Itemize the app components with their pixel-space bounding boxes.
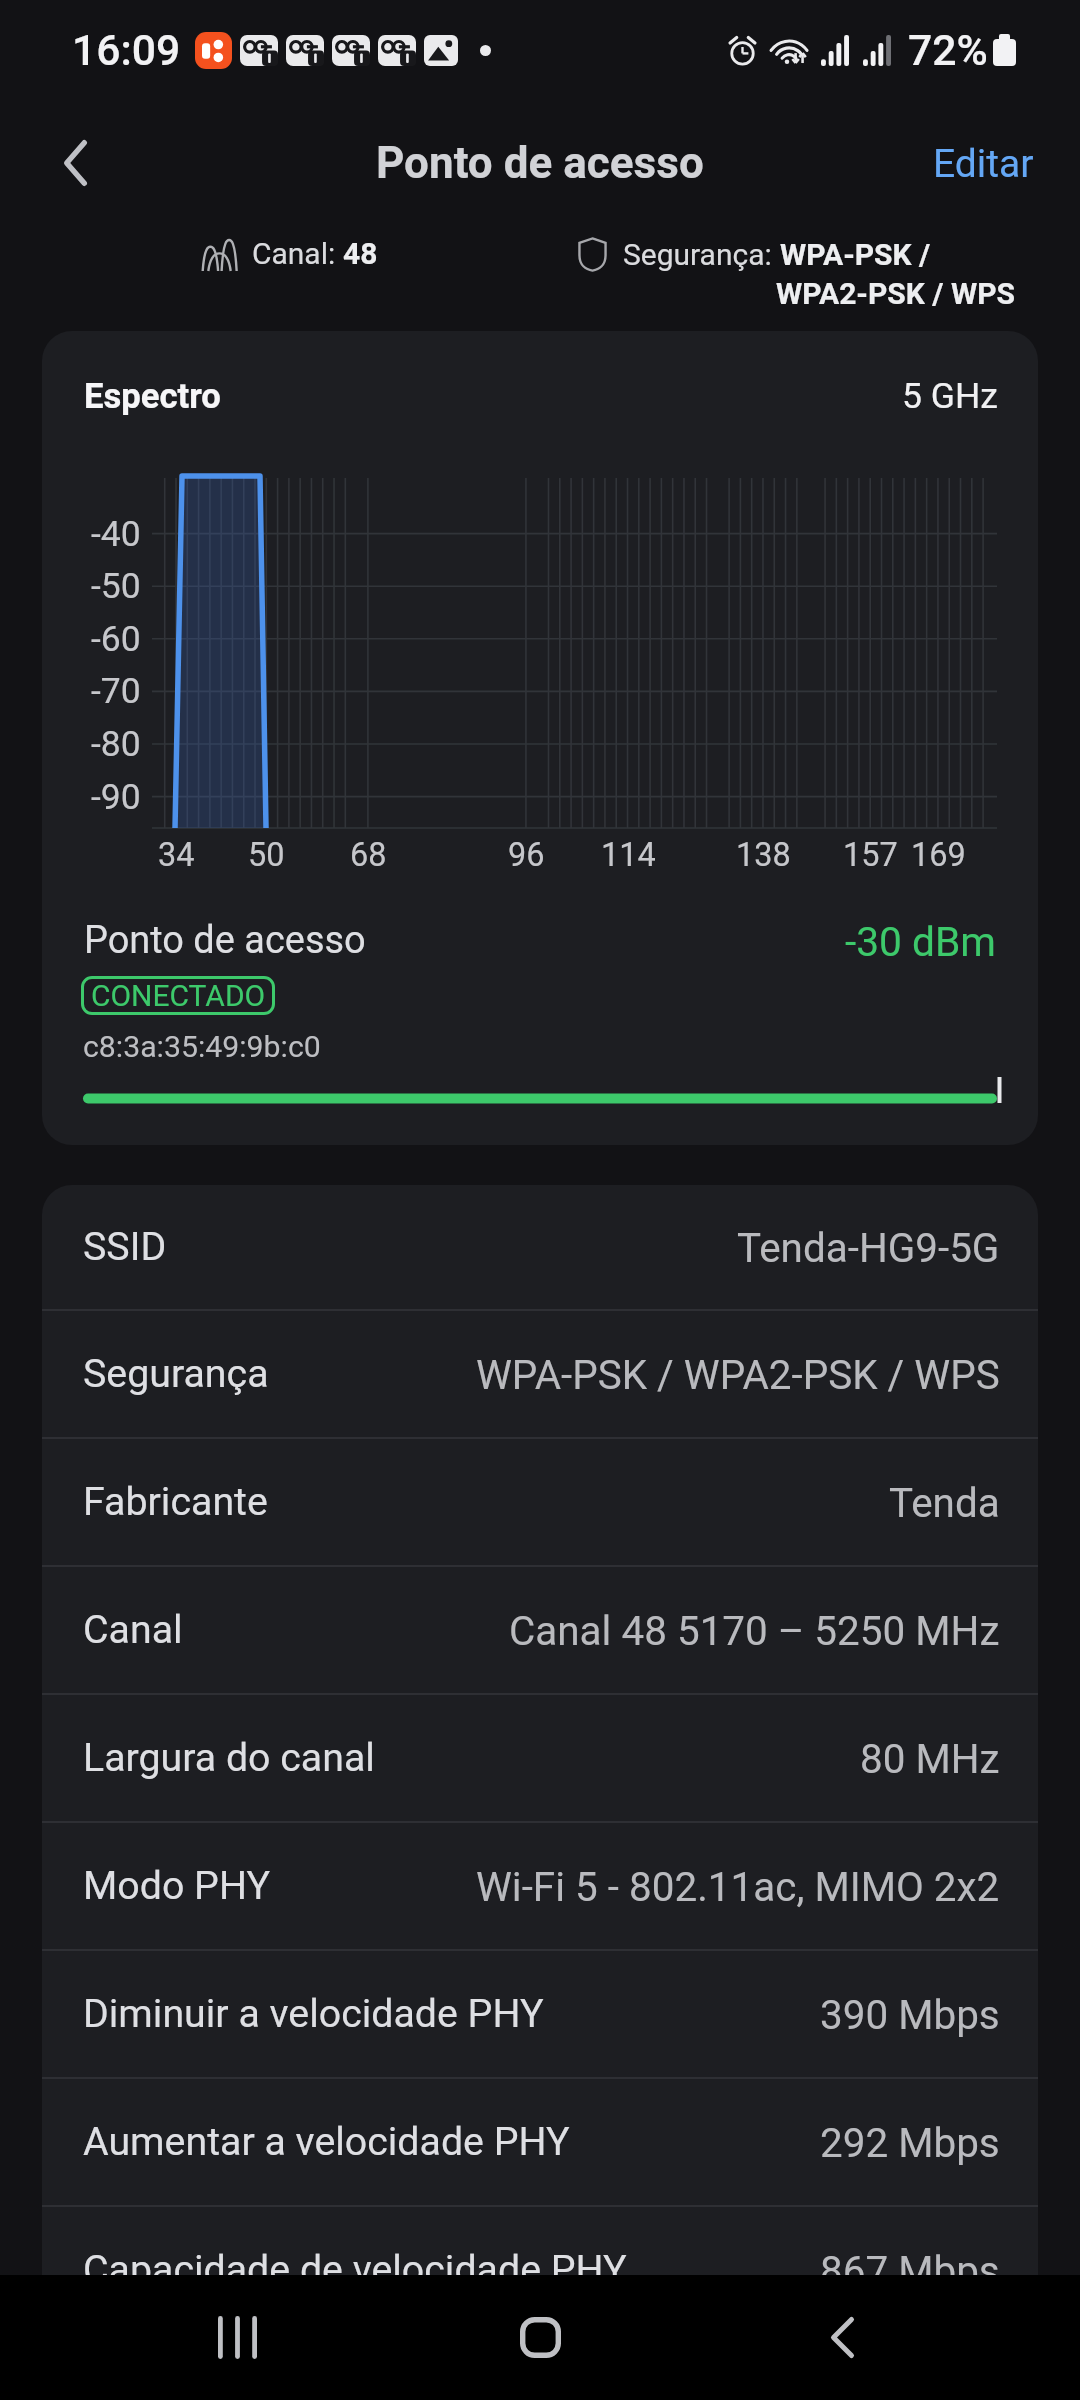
- button[interactable]: Recentes: [127, 2275, 347, 2400]
- button[interactable]: Modo PHY: [42, 1823, 1038, 1949]
- staticText: Segurança: [83, 1351, 269, 1397]
- staticText: 114: [601, 836, 656, 874]
- staticText: 169: [911, 836, 966, 874]
- staticText: Canal:: [252, 236, 343, 271]
- staticText: Ponto de acesso: [84, 918, 366, 960]
- button[interactable]: Diminuir a velocidade PHY: [42, 1951, 1038, 2077]
- button[interactable]: Fabricante: [42, 1439, 1038, 1565]
- button[interactable]: Capacidade de velocidade PHY: [42, 2207, 1038, 2333]
- staticText: Canal 48 5170 – 5250 MHz: [509, 1607, 1000, 1654]
- staticText: Canal: [83, 1607, 183, 1653]
- staticText: Aumentar a velocidade PHY: [83, 2119, 570, 2165]
- staticText: 867 Mbps: [820, 2247, 1000, 2294]
- staticText: -40: [91, 513, 141, 555]
- button[interactable]: Espectro: [42, 331, 1038, 1145]
- staticText: Modo PHY: [83, 1863, 271, 1909]
- button[interactable]: Voltar: [20, 108, 130, 218]
- staticText: Largura do canal: [83, 1735, 375, 1781]
- staticText: Tenda-HG9-5G: [737, 1224, 1000, 1271]
- staticText: Wi-Fi 5 - 802.11ac, MIMO 2x2: [476, 1863, 1000, 1910]
- staticText: WPA-PSK / WPA2-PSK / WPS: [476, 1351, 1000, 1398]
- staticText: -80: [91, 723, 141, 765]
- button[interactable]: Editar: [887, 119, 1080, 209]
- staticText: WPA2-PSK / WPS: [776, 276, 1015, 311]
- staticText: 80 MHz: [860, 1735, 1000, 1782]
- staticText: 68: [350, 836, 387, 874]
- staticText: WPA-PSK /: [780, 237, 931, 272]
- staticText: 5 GHz: [902, 375, 998, 417]
- staticText: 138: [736, 836, 791, 874]
- staticText: -60: [91, 618, 141, 660]
- staticText: -30 dBm: [845, 918, 997, 960]
- staticText: Diminuir a velocidade PHY: [83, 1991, 544, 2037]
- button[interactable]: Segurança: [42, 1311, 1038, 1437]
- staticText: CONECTADO: [91, 978, 266, 1013]
- staticText: Segurança:: [623, 237, 780, 272]
- button[interactable]: SSID: [42, 1185, 1038, 1309]
- button[interactable]: Início: [430, 2275, 650, 2400]
- button[interactable]: Largura do canal: [42, 1695, 1038, 1821]
- staticText: Editar: [933, 141, 1034, 187]
- staticText: 72%: [908, 25, 988, 75]
- staticText: 157: [843, 836, 898, 874]
- button[interactable]: Canal: [42, 1567, 1038, 1693]
- staticText: 48: [343, 236, 378, 271]
- staticText: Espectro: [84, 376, 221, 417]
- staticText: 50: [248, 836, 285, 874]
- staticText: -50: [91, 565, 141, 607]
- staticText: Fabricante: [83, 1479, 268, 1525]
- button[interactable]: Voltar: [732, 2275, 952, 2400]
- staticText: 34: [158, 836, 195, 874]
- button[interactable]: Aumentar a velocidade PHY: [42, 2079, 1038, 2205]
- staticText: Capacidade de velocidade PHY: [83, 2247, 627, 2293]
- staticText: 292 Mbps: [820, 2119, 1000, 2166]
- staticText: Ponto de acesso: [376, 137, 704, 189]
- staticText: Tenda: [889, 1479, 1000, 1526]
- staticText: SSID: [83, 1224, 167, 1270]
- staticText: 96: [508, 836, 545, 874]
- staticText: c8:3a:35:49:9b:c0: [83, 1029, 321, 1064]
- staticText: -70: [91, 670, 141, 712]
- staticText: -90: [91, 776, 141, 818]
- staticText: 16:09: [72, 25, 181, 75]
- staticText: 390 Mbps: [820, 1991, 1000, 2038]
